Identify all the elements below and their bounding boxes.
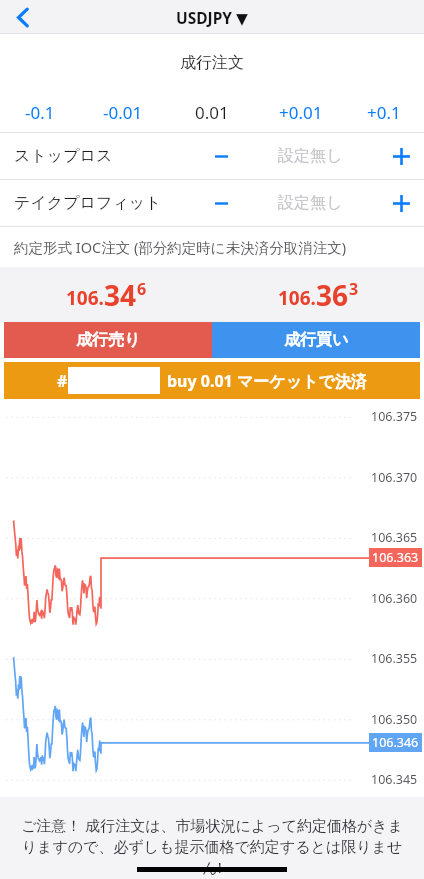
- staticText: 6: [137, 278, 147, 300]
- staticText: 106.355: [371, 650, 418, 667]
- button[interactable]: 106.: [212, 267, 424, 322]
- button[interactable]: 設定無し: [242, 133, 378, 179]
- staticText: 106.: [66, 285, 104, 311]
- staticText: 106.: [278, 285, 316, 311]
- button[interactable]: Increase ストップロス: [378, 133, 424, 179]
- staticText: 成行注文: [180, 53, 244, 73]
- button[interactable]: Increase テイクプロフィット: [378, 180, 424, 226]
- button[interactable]: 106.346: [372, 734, 419, 751]
- staticText: 0.01: [195, 101, 229, 124]
- button[interactable]: +0.1: [343, 92, 424, 132]
- staticText: USDJPY ▼: [176, 7, 249, 28]
- staticText: 106.370: [371, 469, 418, 486]
- staticText: ご注意！ 成行注文は、市場状況によって約定価格がきまりますので、必ずしも提示価格…: [14, 815, 410, 878]
- staticText: 106.346: [372, 734, 419, 751]
- staticText: 3: [349, 278, 359, 300]
- staticText: buy 0.01 マーケットで決済: [167, 370, 367, 392]
- staticText: 34: [104, 276, 137, 314]
- staticText: +0.1: [367, 101, 401, 124]
- staticText: 106.363: [372, 549, 419, 566]
- button[interactable]: 0.01: [165, 92, 258, 132]
- staticText: 設定無し: [278, 146, 343, 166]
- staticText: テイクプロフィット: [14, 193, 162, 213]
- button[interactable]: 106.363: [372, 549, 419, 566]
- staticText: 106.345: [371, 771, 418, 788]
- button[interactable]: 設定無し: [242, 180, 378, 226]
- staticText: -0.01: [103, 101, 143, 124]
- button[interactable]: -0.01: [80, 92, 165, 132]
- staticText: 成行買い: [284, 330, 349, 350]
- button[interactable]: Decrease テイクプロフィット: [200, 180, 242, 226]
- button[interactable]: -0.1: [0, 92, 80, 132]
- button[interactable]: #: [4, 362, 420, 399]
- staticText: 設定無し: [278, 193, 343, 213]
- staticText: 約定形式 IOC注文 (部分約定時に未決済分取消注文): [14, 237, 346, 257]
- staticText: #: [57, 370, 68, 392]
- button[interactable]: 成行売り: [4, 322, 212, 358]
- button[interactable]: 106.: [0, 267, 212, 322]
- staticText: 成行売り: [76, 330, 141, 350]
- staticText: 106.360: [371, 590, 418, 607]
- button[interactable]: Back: [0, 0, 46, 34]
- staticText: 36: [316, 276, 349, 314]
- button[interactable]: Decrease ストップロス: [200, 133, 242, 179]
- button[interactable]: 成行買い: [212, 322, 420, 358]
- button[interactable]: USDJPY ▼: [0, 0, 424, 34]
- staticText: +0.01: [279, 101, 323, 124]
- staticText: 106.365: [371, 529, 418, 546]
- staticText: 106.375: [371, 408, 418, 425]
- staticText: -0.1: [25, 101, 55, 124]
- button[interactable]: +0.01: [258, 92, 343, 132]
- staticText: 106.350: [371, 711, 418, 728]
- staticText: ストップロス: [14, 146, 113, 166]
